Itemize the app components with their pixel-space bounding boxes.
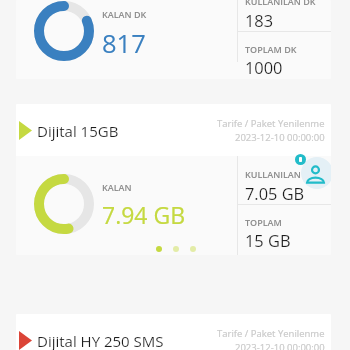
button[interactable]: KALAN DK [16, 0, 331, 79]
staticText: 7.05 GB [245, 182, 305, 204]
staticText: KULLANILAN DK [245, 0, 316, 7]
staticText: TOPLAM DK [245, 43, 297, 55]
staticText: 1000 [245, 56, 283, 78]
other: Line owner [284, 155, 331, 203]
staticText: 817 [102, 26, 146, 61]
staticText: KULLANILAN [245, 168, 301, 180]
staticText: 2023-12-10 00:00:00 [235, 341, 325, 350]
button[interactable]: Dijital 15GB [16, 104, 331, 255]
staticText: 15 GB [245, 229, 291, 251]
staticText: Tarife / Paket Yenilenme [217, 327, 325, 340]
staticText: KALAN DK [102, 8, 147, 20]
staticText: Dijital 15GB [37, 121, 119, 141]
staticText: 2023-12-10 00:00:00 [235, 131, 325, 144]
staticText: Tarife / Paket Yenilenme [217, 117, 325, 130]
staticText: KALAN [102, 181, 132, 193]
staticText: TOPLAM [245, 216, 282, 228]
staticText: 7.94 GB [102, 199, 186, 230]
staticText: 183 [245, 9, 274, 31]
staticText: Dijital HY 250 SMS [37, 331, 164, 350]
button[interactable]: Dijital HY 250 SMS [16, 314, 331, 350]
